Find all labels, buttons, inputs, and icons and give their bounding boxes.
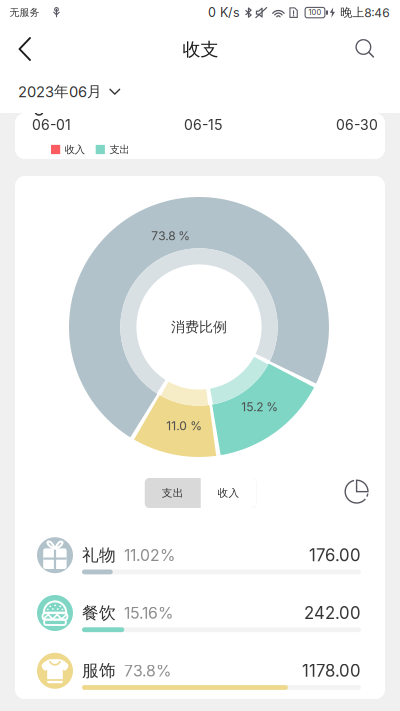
staticText: 06-15 xyxy=(184,116,223,133)
staticText: 收支 xyxy=(182,38,218,61)
staticText: 100 xyxy=(308,8,321,17)
button[interactable]: Switch chart type xyxy=(344,479,370,505)
staticText: 收入 xyxy=(217,486,239,500)
staticText: 15.16% xyxy=(124,603,173,622)
staticText: 服饰 xyxy=(82,660,116,681)
button[interactable]: 餐饮 xyxy=(15,591,385,649)
button[interactable]: 服饰 xyxy=(15,649,385,706)
button[interactable]: 礼物 xyxy=(15,533,385,591)
button[interactable]: Back xyxy=(2,28,48,70)
staticText: 礼物 xyxy=(82,545,116,566)
staticText: 支出 xyxy=(162,486,184,500)
staticText: 支出 xyxy=(109,143,129,156)
staticText: 176.00 xyxy=(309,545,361,565)
staticText: 餐饮 xyxy=(82,602,116,623)
staticText: 1178.00 xyxy=(302,661,361,681)
staticText: 11.02% xyxy=(124,546,175,565)
staticText: 06-01 xyxy=(32,116,71,133)
staticText: 无服务 xyxy=(9,6,39,19)
staticText: 06-30 xyxy=(336,116,378,133)
staticText: 73.8 % xyxy=(151,229,190,243)
button[interactable]: Search xyxy=(341,28,387,70)
staticText: 晚上8:46 xyxy=(340,5,389,20)
button[interactable]: 支出 xyxy=(145,478,201,508)
staticText: 15.2 % xyxy=(241,400,278,414)
staticText: 11.0 % xyxy=(166,419,202,433)
button[interactable]: 2023年06月 xyxy=(0,70,160,113)
staticText: 0 K/s xyxy=(208,5,240,20)
staticText: 收入 xyxy=(65,143,85,156)
button[interactable]: 收入 xyxy=(201,478,256,508)
staticText: 2023年06月 xyxy=(18,82,102,101)
staticText: 242.00 xyxy=(304,603,361,623)
staticText: 消费比例 xyxy=(171,318,227,336)
staticText: 73.8% xyxy=(124,661,171,680)
